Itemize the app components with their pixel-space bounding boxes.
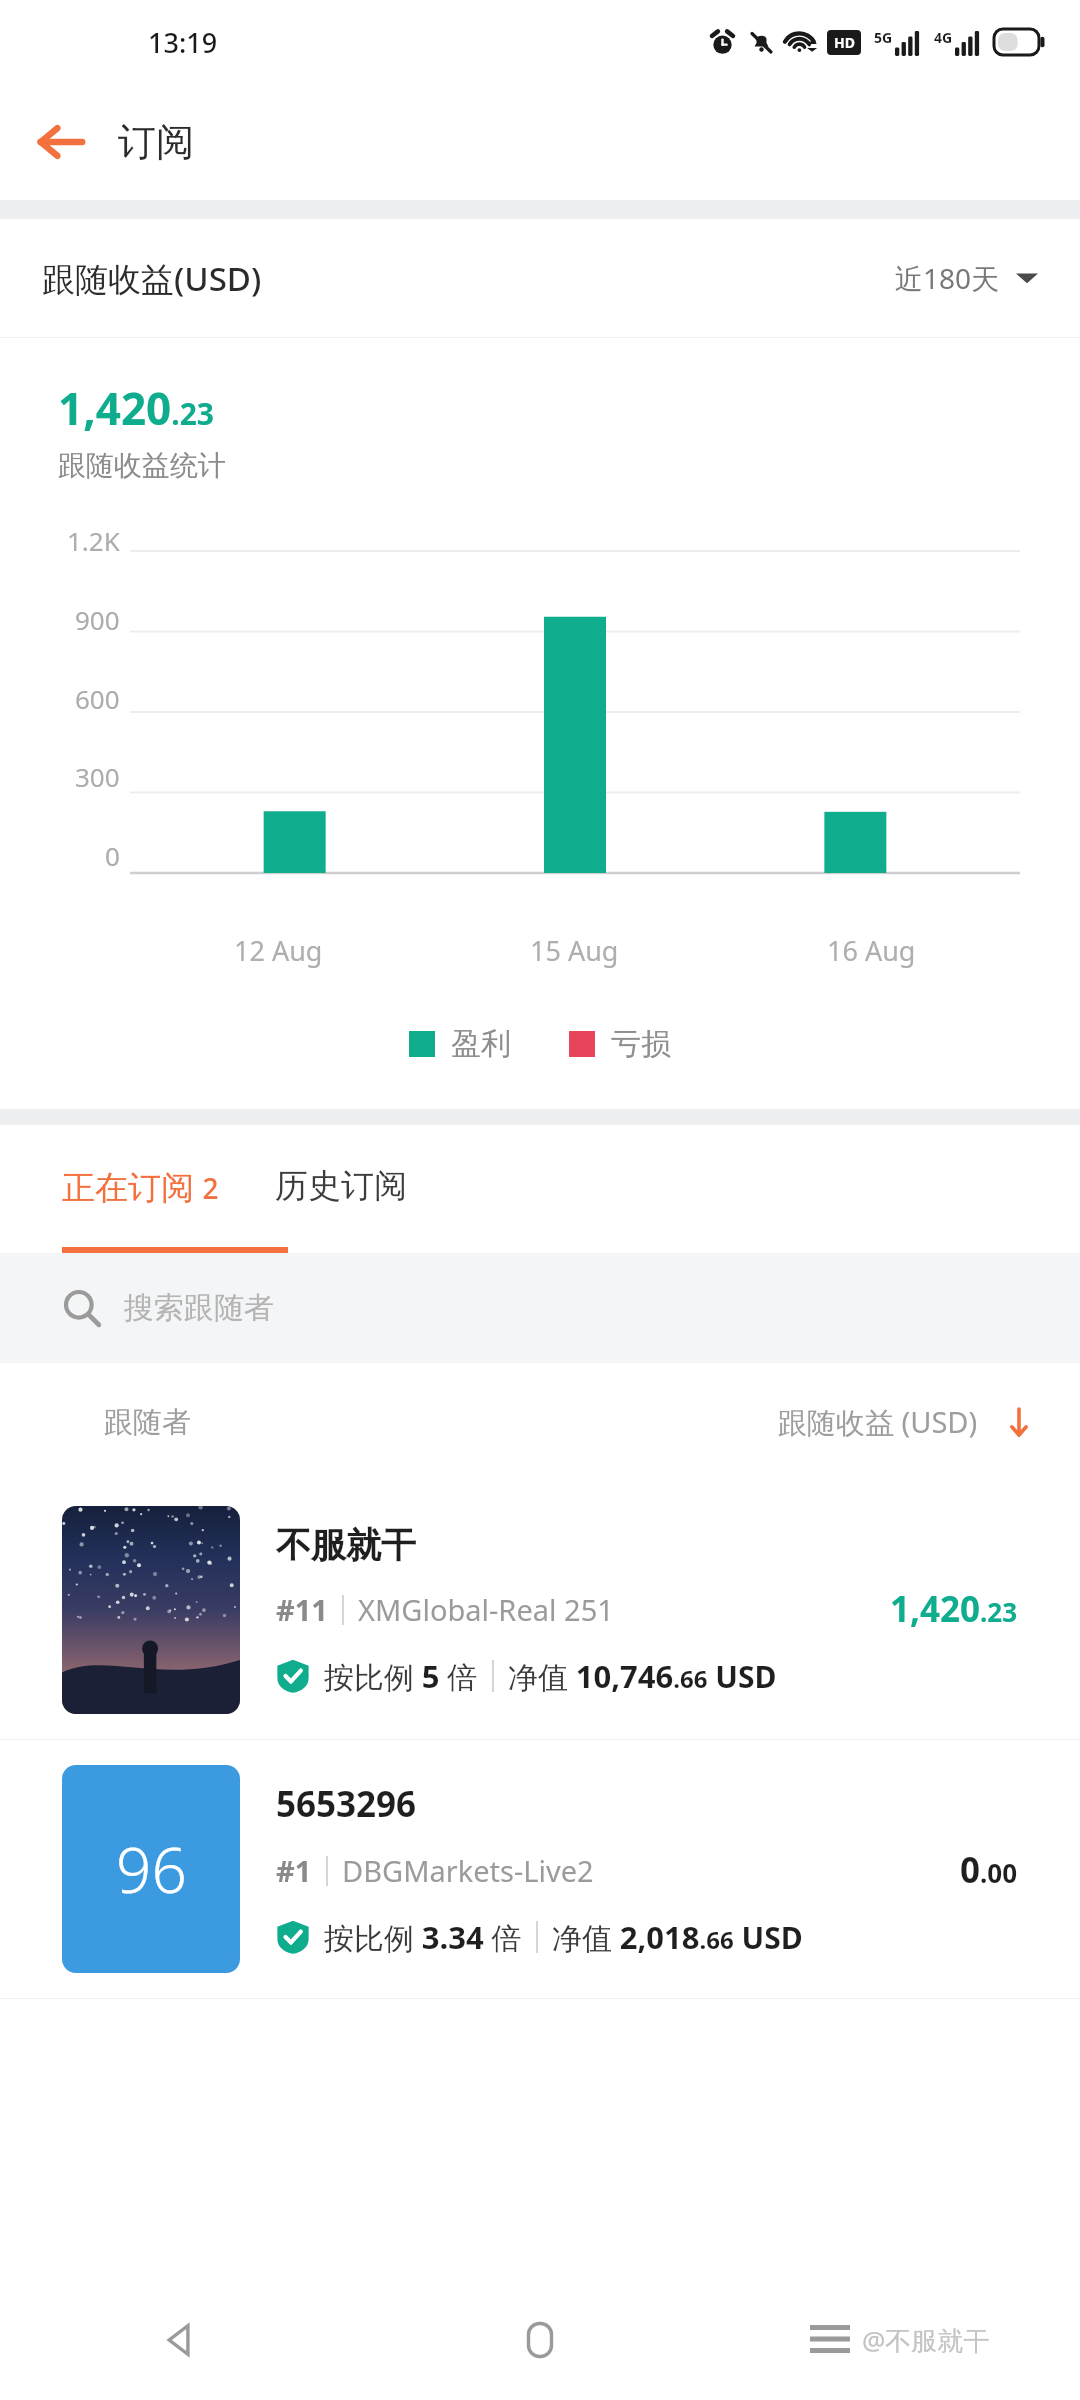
button[interactable]: Recent apps <box>720 2280 1080 2400</box>
staticText: 近180天 <box>895 259 1000 297</box>
staticText: HD <box>834 33 855 52</box>
staticText: 16 Aug <box>827 932 916 969</box>
button[interactable]: 正在订阅 2 <box>0 1125 219 1247</box>
staticText: 5653296 <box>276 1780 417 1828</box>
button[interactable]: 96 <box>0 1740 1080 1998</box>
staticText: 300 <box>75 759 120 794</box>
staticText: 15 Aug <box>530 932 619 969</box>
staticText: 订阅 <box>118 118 194 166</box>
staticText: DBGMarkets-Live2 <box>342 1851 594 1890</box>
staticText: 4G <box>934 28 953 47</box>
staticText: 0.00 <box>960 1846 1018 1894</box>
staticText: 12 Aug <box>234 932 323 969</box>
button[interactable]: 跟随收益 (USD) <box>778 1402 1034 1442</box>
staticText: 历史订阅 <box>275 1165 407 1207</box>
button[interactable]: Back <box>0 2280 360 2400</box>
staticText: @不服就干 <box>862 2322 990 2358</box>
staticText: 亏损 <box>611 1025 671 1063</box>
button[interactable]: 近180天 <box>895 259 1038 297</box>
staticText: 按比例 3.34 倍 <box>324 1916 522 1958</box>
staticText: 跟随收益(USD) <box>42 256 262 301</box>
staticText: 净值 2,018.66 USD <box>552 1916 803 1958</box>
button[interactable]: Back <box>26 94 96 190</box>
button[interactable]: Home <box>360 2280 720 2400</box>
staticText: 96 <box>116 1827 187 1911</box>
staticText: 1,420.23 <box>890 1585 1018 1633</box>
staticText: 13:19 <box>148 24 218 61</box>
staticText: 按比例 5 倍 <box>324 1655 478 1697</box>
button[interactable]: 搜索跟随者 <box>0 1253 1080 1363</box>
staticText: 盈利 <box>451 1025 511 1063</box>
staticText: 1.2K <box>67 523 120 558</box>
staticText: XMGlobal-Real 251 <box>358 1590 614 1629</box>
staticText: 900 <box>75 602 120 637</box>
staticText: 搜索跟随者 <box>124 1289 274 1327</box>
staticText: 1,420.23 <box>58 378 214 438</box>
button[interactable]: 历史订阅 <box>219 1125 407 1247</box>
staticText: 跟随收益 (USD) <box>778 1402 978 1442</box>
staticText: 5G <box>874 28 893 47</box>
staticText: 跟随收益统计 <box>58 448 226 483</box>
staticText: 跟随者 <box>104 1404 191 1441</box>
other: Sort descending <box>1004 1407 1034 1437</box>
staticText: 600 <box>75 681 120 716</box>
staticText: #1 <box>276 1851 312 1890</box>
staticText: 0 <box>105 838 120 873</box>
button[interactable]: 不服就干 <box>0 1481 1080 1739</box>
staticText: 净值 10,746.66 USD <box>508 1655 777 1697</box>
staticText: #11 <box>276 1590 328 1629</box>
staticText: 正在订阅 2 <box>62 1164 219 1209</box>
staticText: 不服就干 <box>276 1523 416 1567</box>
